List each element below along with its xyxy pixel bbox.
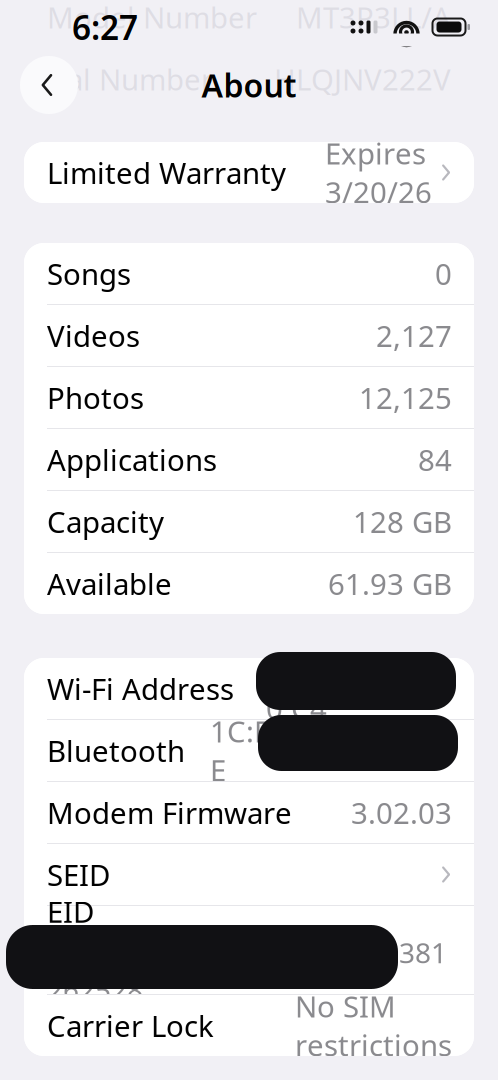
staticText: Capacity	[47, 502, 164, 541]
staticText: 84	[418, 440, 452, 479]
button[interactable]: Songs	[24, 243, 474, 304]
staticText: Applications	[47, 440, 217, 479]
staticText: 2,127	[376, 316, 452, 355]
button[interactable]: Videos	[24, 305, 474, 366]
staticText: Expires 3/20/26	[325, 133, 432, 211]
staticText: 8904903200720888800192381262528	[47, 934, 447, 1008]
staticText: 0	[435, 254, 452, 293]
staticText: HLQJNV222V	[274, 59, 451, 98]
staticText: Carrier Lock	[47, 1006, 214, 1045]
staticText: Bluetooth	[47, 731, 185, 770]
button[interactable]: Photos	[24, 367, 474, 428]
staticText: 6:27	[72, 5, 138, 49]
button[interactable]: Carrier Lock	[24, 995, 474, 1056]
button[interactable]: Modem Firmware	[24, 782, 474, 843]
staticText: SEID	[47, 855, 110, 894]
button[interactable]: Applications	[24, 429, 474, 490]
staticText: 61.93 GB	[328, 564, 452, 603]
staticText: 1C:E2:09:55:80:C4	[266, 649, 452, 727]
button[interactable]: SEID	[24, 844, 474, 905]
button[interactable]: Available	[24, 553, 474, 614]
staticText: Songs	[47, 254, 131, 293]
staticText: 128 GB	[353, 502, 452, 541]
button[interactable]: Back	[20, 56, 78, 114]
staticText: Limited Warranty	[47, 153, 286, 192]
staticText: rial Number	[47, 59, 213, 98]
staticText: 1C:E2:09:55:ED:AE	[210, 711, 452, 789]
staticText: EID	[47, 892, 94, 931]
button[interactable]: Limited Warranty	[24, 142, 474, 203]
button[interactable]: Capacity	[24, 491, 474, 552]
staticText: Modem Firmware	[47, 793, 292, 832]
staticText: About	[201, 64, 296, 106]
staticText: 12,125	[359, 378, 452, 417]
staticText: Available	[47, 564, 172, 603]
button[interactable]: Wi-Fi Address	[24, 658, 474, 719]
staticText: Model Number	[47, 0, 257, 36]
staticText: Wi-Fi Address	[47, 669, 234, 708]
staticText: MT3P3LL/A	[296, 0, 451, 36]
staticText: Photos	[47, 378, 144, 417]
button[interactable]: Bluetooth	[24, 720, 474, 781]
button[interactable]: EID	[24, 906, 474, 994]
staticText: 3.02.03	[351, 793, 452, 832]
staticText: Videos	[47, 316, 140, 355]
staticText: No SIM restrictions	[295, 986, 452, 1064]
